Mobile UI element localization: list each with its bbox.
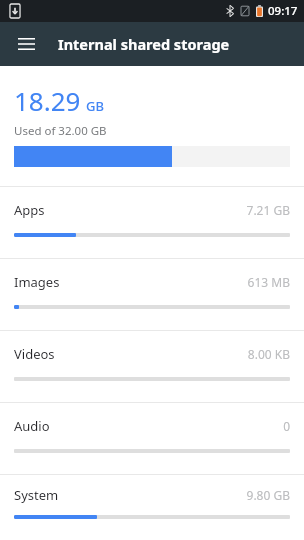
- staticText: 09:17: [268, 3, 298, 19]
- staticText: Apps: [14, 201, 45, 219]
- button[interactable]: Audio: [0, 402, 304, 474]
- staticText: 9.80 GB: [246, 487, 290, 503]
- staticText: Images: [14, 273, 60, 291]
- button[interactable]: Open navigation menu: [8, 26, 44, 62]
- staticText: Audio: [14, 417, 50, 435]
- button[interactable]: System: [0, 474, 304, 540]
- button[interactable]: Apps: [0, 186, 304, 258]
- staticText: System: [14, 486, 59, 504]
- staticText: 18.29: [14, 83, 81, 118]
- staticText: Videos: [14, 345, 55, 363]
- staticText: 8.00 KB: [247, 346, 290, 362]
- button[interactable]: Videos: [0, 330, 304, 402]
- staticText: 0: [283, 418, 290, 434]
- staticText: Used of 32.00 GB: [14, 123, 107, 139]
- staticText: 613 MB: [247, 274, 290, 290]
- staticText: GB: [86, 97, 104, 115]
- staticText: 7.21 GB: [246, 202, 290, 218]
- button[interactable]: Images: [0, 258, 304, 330]
- staticText: Internal shared storage: [58, 34, 230, 54]
